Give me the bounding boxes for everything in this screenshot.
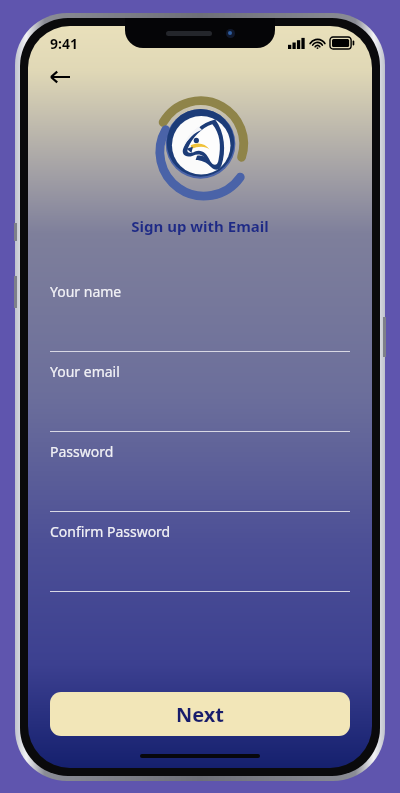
- button[interactable]: Your name: [28, 282, 372, 362]
- staticText: Your name: [50, 282, 122, 301]
- button[interactable]: Next: [50, 692, 350, 736]
- staticText: Next: [176, 701, 225, 728]
- staticText: Confirm Password: [50, 522, 171, 541]
- button[interactable]: Back: [40, 60, 80, 94]
- staticText: Password: [50, 442, 114, 461]
- staticText: Sign up with Email: [28, 216, 372, 236]
- button[interactable]: Your email: [28, 362, 372, 442]
- button[interactable]: Password: [28, 442, 372, 522]
- button[interactable]: Confirm Password: [28, 522, 372, 602]
- staticText: Your email: [50, 362, 120, 381]
- staticText: 9:41: [50, 34, 78, 53]
